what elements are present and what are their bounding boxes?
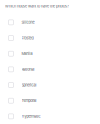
staticText: Frosted <box>21 36 33 40</box>
staticText: Manila <box>21 51 32 56</box>
button[interactable]: Spherical <box>0 77 100 93</box>
staticText: Temporal <box>21 98 36 103</box>
button[interactable]: Temporal <box>0 93 100 109</box>
staticText: Spherical <box>21 83 36 87</box>
staticText: Rational <box>21 67 34 72</box>
button[interactable]: Rational <box>0 61 100 77</box>
staticText: Silicone <box>21 20 34 25</box>
button[interactable]: Silicone <box>0 14 100 30</box>
button[interactable]: Hypermatic <box>0 108 100 124</box>
staticText: Which house want to have the photos? <box>5 4 69 8</box>
button[interactable]: Manila <box>0 46 100 62</box>
staticText: Hypermatic <box>21 114 40 119</box>
button[interactable]: Frosted <box>0 30 100 46</box>
